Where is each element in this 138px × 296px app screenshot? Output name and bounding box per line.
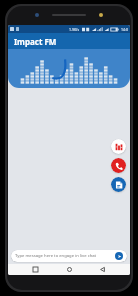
staticText: Impact FM [14, 36, 57, 47]
button[interactable]: Impact FM [8, 33, 130, 49]
button[interactable] [8, 49, 130, 88]
button[interactable]: Type message here to engage in live chat [11, 250, 127, 262]
button[interactable]: Back [97, 264, 108, 275]
button[interactable]: Podcasts [111, 139, 126, 154]
button[interactable]: Recent apps [30, 264, 41, 275]
button[interactable]: Call the studio [111, 158, 126, 173]
button[interactable]: Song request [111, 177, 126, 192]
staticText: 1.9K/s [69, 27, 80, 32]
button[interactable]: Home [64, 264, 75, 275]
staticText: 14:0 [121, 27, 128, 32]
button[interactable]: Send message [115, 252, 123, 260]
staticText: Type message here to engage in live chat [15, 253, 113, 259]
